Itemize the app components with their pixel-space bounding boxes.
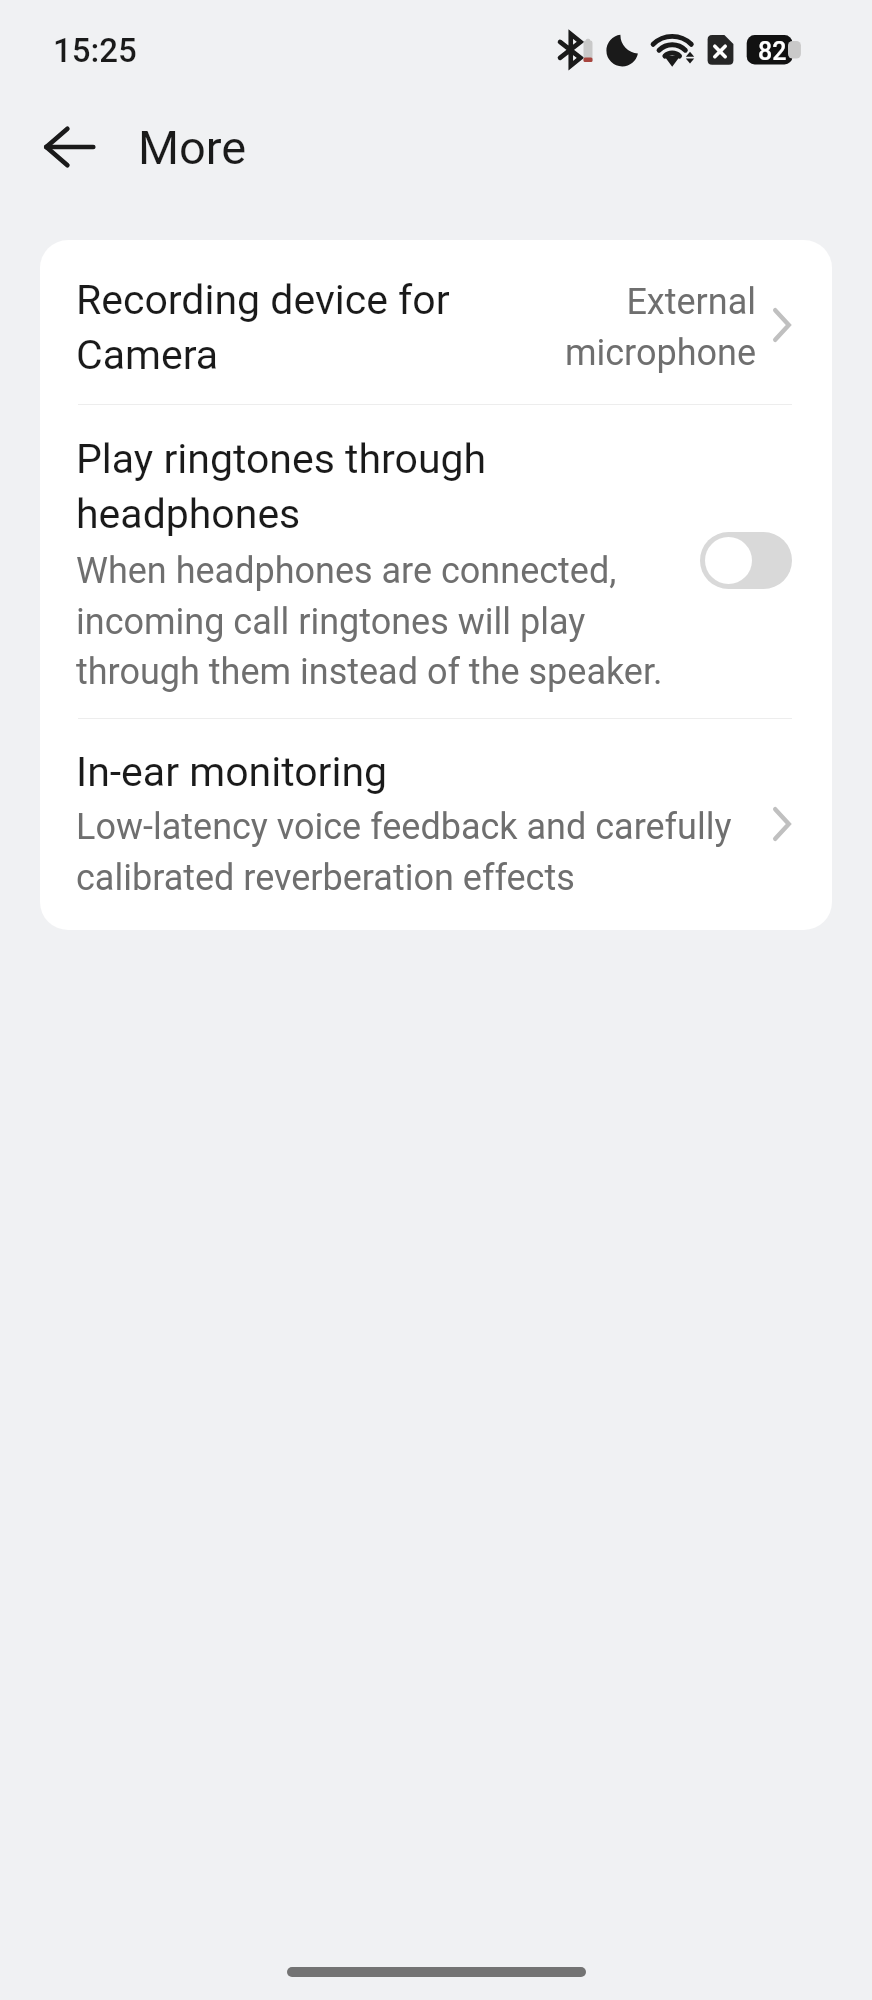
button[interactable]: Play ringtones through headphones — [40, 404, 832, 718]
staticText: When headphones are connected, incoming … — [76, 550, 676, 692]
button[interactable]: In-ear monitoring — [40, 718, 832, 930]
button[interactable]: Back — [26, 101, 118, 193]
staticText: 15:25 — [53, 31, 137, 70]
staticText: External microphone — [508, 281, 756, 373]
staticText: More — [138, 120, 247, 175]
staticText: Play ringtones through headphones — [76, 435, 676, 538]
button[interactable]: Play ringtones through headphones — [700, 532, 792, 589]
staticText: Low-latency voice feedback and carefully… — [76, 806, 766, 898]
staticText: In-ear monitoring — [76, 748, 736, 796]
staticText: 82 — [758, 37, 787, 66]
staticText: Recording device for Camera — [76, 276, 506, 379]
button[interactable]: Recording device for Camera — [40, 240, 832, 404]
